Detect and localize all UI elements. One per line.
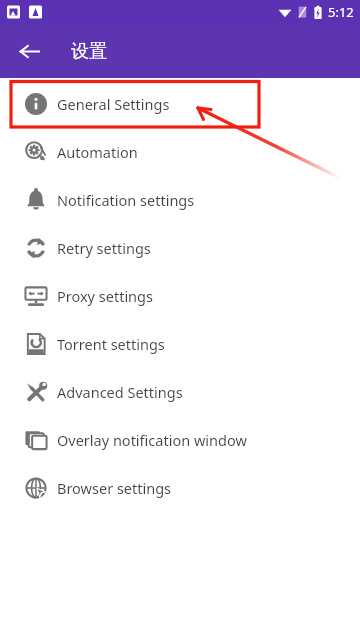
staticText: Notification settings (57, 190, 195, 210)
button[interactable]: Automation (0, 128, 360, 176)
staticText: Retry settings (57, 238, 151, 258)
button[interactable]: Overlay notification window (0, 416, 360, 464)
staticText: Torrent settings (57, 334, 165, 354)
staticText: Advanced Settings (57, 382, 183, 402)
staticText: Automation (57, 142, 138, 162)
button[interactable]: General Settings (0, 80, 360, 128)
staticText: Overlay notification window (57, 430, 247, 450)
staticText: General Settings (57, 94, 170, 114)
staticText: 设置 (71, 40, 107, 63)
button[interactable]: Retry settings (0, 224, 360, 272)
button[interactable]: Proxy settings (0, 272, 360, 320)
button[interactable]: Notification settings (0, 176, 360, 224)
staticText: Proxy settings (57, 286, 153, 306)
staticText: 5:12 (328, 3, 354, 21)
button[interactable]: Back (12, 34, 46, 68)
button[interactable]: Torrent settings (0, 320, 360, 368)
button[interactable]: Browser settings (0, 464, 360, 512)
staticText: Browser settings (57, 478, 172, 498)
button[interactable]: Advanced Settings (0, 368, 360, 416)
